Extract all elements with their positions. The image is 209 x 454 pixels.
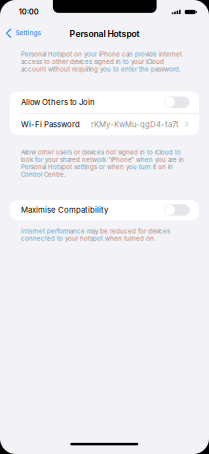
staticText: Personal Hotspot on your iPhone can prov… [21, 51, 182, 73]
staticText: 10:00 [19, 7, 39, 16]
staticText: Settings [16, 29, 42, 37]
staticText: rKMy-KwMu-qgD4-ta7t [91, 120, 179, 129]
staticText: Internet performance may be reduced for … [21, 227, 170, 242]
staticText: Allow other users or devices not signed … [21, 149, 184, 178]
staticText: Personal Hotspot [69, 29, 139, 39]
staticText: Allow Others to Join [21, 97, 95, 107]
staticText: Wi-Fi Password [21, 120, 80, 129]
staticText: Maximise Compatibility [21, 205, 108, 215]
button[interactable]: Settings [0, 0, 26, 8]
